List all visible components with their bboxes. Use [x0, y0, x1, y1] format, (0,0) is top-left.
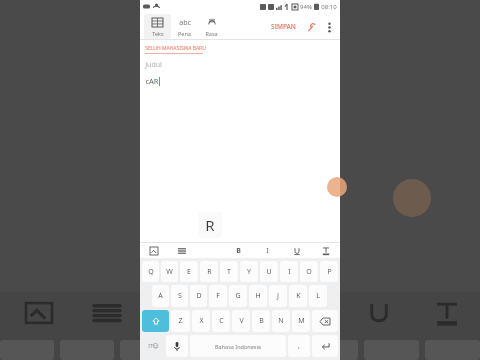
- staticText: I: [266, 246, 269, 256]
- button[interactable]: Y: [240, 261, 258, 282]
- staticText: Pena: [178, 30, 191, 37]
- staticText: ,: [298, 341, 300, 351]
- staticText: I: [288, 267, 291, 277]
- button[interactable]: H: [249, 285, 267, 307]
- staticText: T: [227, 267, 231, 277]
- button[interactable]: SIMPAN: [268, 20, 299, 33]
- staticText: Z: [178, 316, 183, 326]
- staticText: R: [205, 215, 215, 235]
- button[interactable]: Text colour: [311, 243, 340, 258]
- button[interactable]: Teks: [144, 14, 171, 39]
- staticText: P: [327, 267, 332, 277]
- staticText: X: [199, 316, 204, 326]
- staticText: Bahasa Indonesia: [215, 343, 261, 350]
- button[interactable]: P: [320, 261, 338, 282]
- button[interactable]: Bulleted list: [168, 243, 196, 258]
- button[interactable]: D: [190, 285, 207, 307]
- staticText: cAR: [145, 76, 159, 86]
- staticText: B: [236, 246, 241, 256]
- staticText: Rasa: [205, 30, 218, 37]
- staticText: F: [216, 291, 220, 301]
- staticText: D: [196, 291, 202, 301]
- staticText: Y: [247, 267, 251, 277]
- button[interactable]: E: [180, 261, 198, 282]
- button[interactable]: X: [192, 310, 210, 332]
- button[interactable]: Enter: [312, 335, 338, 357]
- button[interactable]: Z: [171, 310, 190, 332]
- staticText: SELUH MAHASISWA BARU: [145, 45, 206, 52]
- button[interactable]: Rasa: [198, 14, 225, 39]
- staticText: M: [298, 316, 305, 326]
- staticText: O: [306, 267, 312, 277]
- staticText: G: [235, 291, 241, 301]
- staticText: Q: [148, 267, 154, 277]
- button[interactable]: W: [161, 261, 178, 282]
- staticText: B: [259, 316, 264, 326]
- button[interactable]: K: [289, 285, 307, 307]
- staticText: Teks: [152, 30, 164, 37]
- button[interactable]: abc: [171, 14, 198, 39]
- button[interactable]: I: [280, 261, 298, 282]
- button[interactable]: S: [171, 285, 188, 307]
- button[interactable]: O: [300, 261, 318, 282]
- button[interactable]: B: [252, 310, 270, 332]
- button[interactable]: M: [292, 310, 310, 332]
- staticText: V: [239, 316, 244, 326]
- button[interactable]: Bahasa Indonesia: [190, 335, 286, 357]
- staticText: 94%: [300, 3, 312, 11]
- staticText: E: [187, 267, 191, 277]
- staticText: U: [266, 267, 272, 277]
- staticText: !?☺: [148, 342, 159, 350]
- staticText: N: [278, 316, 284, 326]
- staticText: SIMPAN: [271, 22, 296, 31]
- button[interactable]: L: [309, 285, 327, 307]
- button[interactable]: Comma: [288, 335, 310, 357]
- button[interactable]: Shift: [142, 310, 169, 332]
- button[interactable]: U: [260, 261, 278, 282]
- button[interactable]: F: [209, 285, 227, 307]
- staticText: Judul: [145, 60, 162, 70]
- button[interactable]: SELUH MAHASISWA BARU: [145, 44, 206, 55]
- button[interactable]: More options: [321, 19, 337, 35]
- button[interactable]: R: [200, 261, 218, 282]
- button[interactable]: Insert image: [140, 243, 168, 258]
- staticText: K: [296, 291, 301, 301]
- button[interactable]: J: [269, 285, 287, 307]
- staticText: J: [277, 291, 279, 301]
- button[interactable]: G: [229, 285, 247, 307]
- button[interactable]: Bold: [224, 243, 253, 258]
- button[interactable]: T: [220, 261, 238, 282]
- button[interactable]: C: [212, 310, 230, 332]
- button[interactable]: Underline: [282, 243, 311, 258]
- button[interactable]: Symbols: [142, 335, 164, 357]
- button[interactable]: Voice input: [166, 335, 188, 357]
- staticText: L: [316, 291, 320, 301]
- button[interactable]: Q: [142, 261, 159, 282]
- button[interactable]: Backspace: [312, 310, 338, 332]
- button[interactable]: N: [272, 310, 290, 332]
- button[interactable]: V: [232, 310, 250, 332]
- staticText: A: [158, 291, 163, 301]
- button[interactable]: A: [152, 285, 169, 307]
- button[interactable]: Pin note: [303, 19, 319, 35]
- staticText: C: [219, 316, 224, 326]
- staticText: 08:10: [321, 3, 337, 11]
- staticText: R: [207, 267, 212, 277]
- staticText: S: [178, 291, 182, 301]
- button[interactable]: Italic: [253, 243, 282, 258]
- staticText: W: [166, 267, 173, 277]
- staticText: abc: [179, 18, 191, 28]
- staticText: H: [255, 291, 261, 301]
